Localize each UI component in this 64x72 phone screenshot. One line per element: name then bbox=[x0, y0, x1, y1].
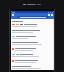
button[interactable] bbox=[11, 47, 54, 53]
button[interactable] bbox=[11, 65, 54, 70]
button[interactable] bbox=[11, 23, 54, 29]
button[interactable] bbox=[17, 16, 49, 18]
button[interactable] bbox=[11, 41, 54, 47]
button[interactable] bbox=[11, 29, 54, 35]
button[interactable] bbox=[11, 35, 54, 41]
button[interactable] bbox=[11, 53, 54, 59]
button[interactable] bbox=[11, 59, 54, 65]
